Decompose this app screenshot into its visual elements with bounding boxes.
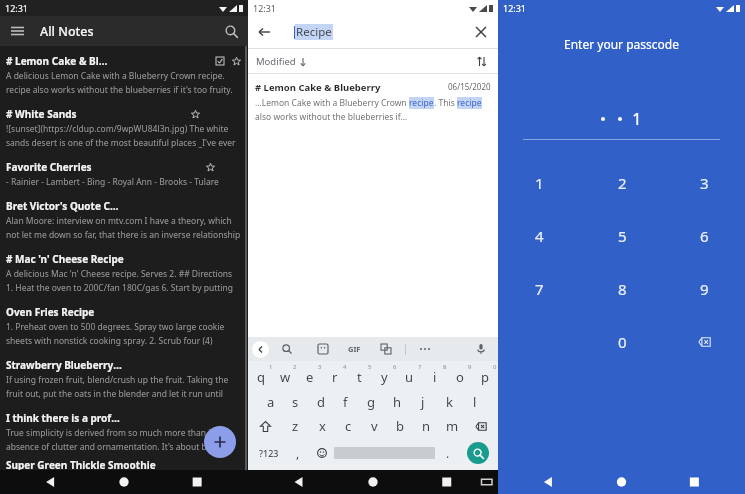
staticText: g bbox=[367, 393, 375, 411]
staticText: 1 bbox=[632, 107, 642, 130]
button[interactable]: 4 bbox=[498, 209, 581, 262]
button[interactable]: Search notes bbox=[220, 20, 242, 42]
button[interactable]: Stickers bbox=[312, 338, 334, 360]
button[interactable]: p bbox=[472, 367, 497, 387]
button[interactable]: Favorite Cherries bbox=[0, 154, 248, 193]
button[interactable]: Collapse toolbar bbox=[252, 341, 269, 358]
button[interactable]: Shift bbox=[249, 413, 282, 439]
button[interactable]: I think there is a profound and enduring bbox=[0, 405, 248, 458]
staticText: v bbox=[371, 417, 378, 435]
button[interactable]: GIF bbox=[348, 344, 361, 354]
staticText: Modified bbox=[256, 55, 296, 68]
staticText: y bbox=[381, 368, 388, 386]
button[interactable]: # Lemon Cake & Blueberry bbox=[248, 74, 498, 123]
button[interactable]: l bbox=[462, 391, 488, 413]
button[interactable]: Translate bbox=[375, 338, 397, 360]
button[interactable]: Search bbox=[467, 442, 489, 464]
staticText: 4 bbox=[535, 226, 544, 246]
button[interactable]: m bbox=[439, 413, 465, 439]
staticText: 2 bbox=[293, 363, 297, 371]
button[interactable]: t bbox=[347, 367, 372, 387]
button[interactable]: 3 bbox=[663, 156, 745, 209]
button[interactable]: Pin note bbox=[230, 55, 242, 67]
button[interactable]: 8 bbox=[581, 262, 663, 315]
button[interactable]: 2 bbox=[581, 156, 663, 209]
button[interactable]: Strawberry Blueberry Oatmeal Protein Smo… bbox=[0, 352, 248, 405]
staticText: fruit out, put the oats in the blender a… bbox=[6, 388, 242, 400]
staticText: 8 bbox=[618, 279, 627, 299]
button[interactable]: e bbox=[297, 367, 322, 387]
button[interactable]: Back bbox=[253, 21, 275, 43]
button[interactable]: s bbox=[283, 391, 308, 413]
button[interactable]: , bbox=[287, 439, 309, 467]
button[interactable]: h bbox=[384, 391, 410, 413]
button[interactable]: q bbox=[249, 367, 273, 387]
button[interactable]: Backspace bbox=[465, 413, 497, 439]
button[interactable]: j bbox=[410, 391, 436, 413]
staticText: recipe also works without the blueberrie… bbox=[6, 84, 242, 96]
button[interactable]: . bbox=[435, 439, 460, 467]
button[interactable]: ?123 bbox=[250, 439, 287, 467]
button[interactable]: x bbox=[309, 413, 335, 439]
button[interactable]: Modified bbox=[256, 55, 307, 68]
staticText: t bbox=[357, 368, 362, 386]
staticText: ![sunset](https://cldup.com/9wpWU84l3n.j… bbox=[6, 123, 229, 135]
staticText: 12:31 bbox=[503, 2, 527, 14]
button[interactable]: c bbox=[335, 413, 361, 439]
button[interactable]: z bbox=[282, 413, 309, 439]
button[interactable]: 5 bbox=[581, 209, 663, 262]
staticText: x bbox=[319, 417, 326, 435]
button[interactable]: Bret Victor's Quote Collection bbox=[0, 193, 248, 246]
staticText: q bbox=[257, 368, 265, 386]
button[interactable]: u bbox=[397, 367, 422, 387]
button[interactable]: # Mac 'n' Cheese Recipe bbox=[0, 246, 248, 299]
staticText: s bbox=[292, 393, 299, 411]
button[interactable]: 0 bbox=[581, 315, 663, 368]
button[interactable]: Pin note bbox=[189, 108, 201, 120]
button[interactable]: New note bbox=[204, 426, 236, 458]
staticText: , bbox=[296, 445, 300, 461]
button[interactable]: 7 bbox=[498, 262, 581, 315]
button[interactable]: o bbox=[447, 367, 472, 387]
button[interactable]: # White Sands bbox=[0, 101, 248, 154]
button[interactable]: n bbox=[413, 413, 439, 439]
button[interactable]: w bbox=[273, 367, 297, 387]
staticText: # Mac 'n' Cheese Recipe bbox=[6, 252, 124, 266]
button[interactable]: Emoji bbox=[309, 439, 334, 467]
button[interactable]: 1 bbox=[498, 156, 581, 209]
staticText: 9 bbox=[700, 279, 709, 299]
button[interactable]: a bbox=[258, 391, 283, 413]
staticText: 0 bbox=[618, 332, 627, 352]
button[interactable]: r bbox=[322, 367, 347, 387]
button[interactable]: # Lemon Cake & Blueberry bbox=[0, 51, 248, 101]
button[interactable]: 9 bbox=[663, 262, 745, 315]
button[interactable]: y bbox=[372, 367, 397, 387]
staticText: also works without the blueberries if… bbox=[255, 111, 408, 123]
button[interactable]: Super Green Thickle Smoothie bbox=[0, 458, 248, 470]
button[interactable]: Pin note bbox=[204, 161, 216, 173]
button[interactable]: More options bbox=[414, 338, 436, 360]
staticText: If using frozen fruit, blend/crush up th… bbox=[6, 374, 229, 386]
staticText: 1. Preheat oven to 500 degrees. Spray tw… bbox=[6, 321, 225, 333]
button[interactable]: Toggle sort order bbox=[471, 51, 491, 71]
button[interactable]: Clear search bbox=[470, 21, 492, 43]
button[interactable]: i bbox=[422, 367, 447, 387]
button[interactable]: g bbox=[358, 391, 384, 413]
button[interactable]: 6 bbox=[663, 209, 745, 262]
staticText: # Lemon Cake & Blueberry bbox=[255, 81, 448, 94]
staticText: a bbox=[267, 393, 275, 411]
button[interactable]: Delete bbox=[663, 315, 745, 368]
staticText: 1 bbox=[269, 363, 273, 371]
button[interactable]: b bbox=[387, 413, 413, 439]
staticText: A delicious Mac 'n' Cheese recipe. Serve… bbox=[6, 268, 233, 280]
button[interactable]: Search bbox=[276, 338, 298, 360]
button[interactable]: Oven Fries Recipe bbox=[0, 299, 248, 352]
button[interactable]: f bbox=[333, 391, 358, 413]
button[interactable]: Voice input bbox=[470, 338, 492, 360]
button[interactable]: k bbox=[436, 391, 462, 413]
button[interactable]: v bbox=[361, 413, 387, 439]
button[interactable]: Open navigation menu bbox=[6, 20, 28, 42]
button[interactable]: Select note bbox=[214, 55, 226, 67]
button[interactable]: d bbox=[308, 391, 333, 413]
